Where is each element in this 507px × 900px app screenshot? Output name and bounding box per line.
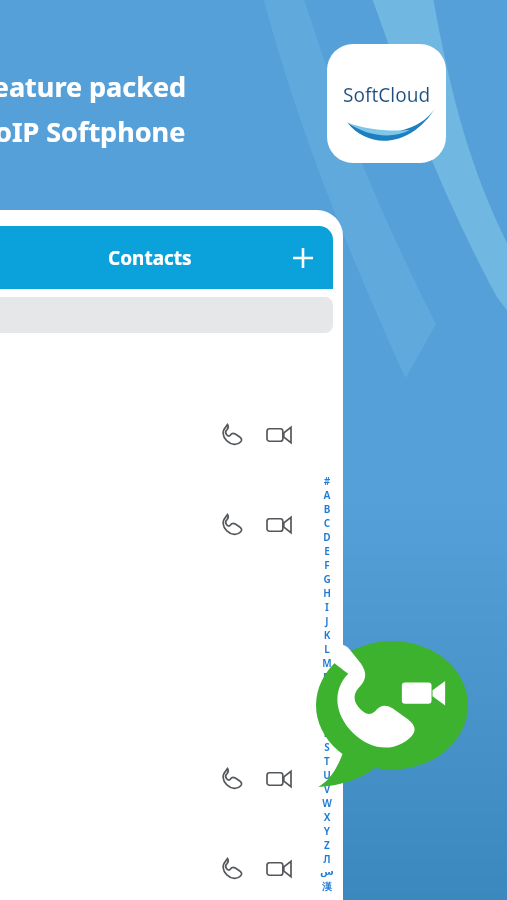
staticText: V xyxy=(316,782,338,796)
staticText: B xyxy=(316,502,338,516)
button[interactable]: Voice call xyxy=(0,847,333,891)
button[interactable]: Voice call xyxy=(211,505,251,545)
staticText: Л xyxy=(316,852,338,866)
button[interactable]: Voice call xyxy=(211,415,251,455)
staticText: Contacts xyxy=(108,245,192,271)
staticText: N xyxy=(316,670,338,684)
staticText: K xyxy=(316,628,338,642)
button[interactable]: Video call xyxy=(259,505,299,545)
button[interactable]: Add contact xyxy=(283,238,323,278)
staticText: D xyxy=(316,530,338,544)
staticText: E xyxy=(316,544,338,558)
staticText: F xyxy=(316,558,338,572)
staticText: Feature packed xyxy=(0,68,187,105)
staticText: J xyxy=(316,614,338,628)
staticText: W xyxy=(316,796,338,810)
button[interactable]: Video call xyxy=(259,849,299,889)
staticText: A xyxy=(316,488,338,502)
staticText: C xyxy=(316,516,338,530)
button[interactable]: Voice call xyxy=(0,503,333,547)
button[interactable]: Voice call xyxy=(211,849,251,889)
staticText: VoIP Softphone xyxy=(0,113,186,150)
staticText: Y xyxy=(316,824,338,838)
staticText: O xyxy=(316,684,338,698)
button[interactable]: Video call xyxy=(259,415,299,455)
button[interactable]: Start a call xyxy=(316,641,468,787)
staticText: T xyxy=(316,754,338,768)
staticText: L xyxy=(316,642,338,656)
staticText: R xyxy=(316,726,338,740)
staticText: H xyxy=(316,586,338,600)
button[interactable]: Voice call xyxy=(0,757,333,801)
button[interactable]: Voice call xyxy=(0,413,333,457)
staticText: SoftCloud xyxy=(343,82,431,108)
button[interactable]: Video call xyxy=(259,759,299,799)
staticText: س xyxy=(316,866,338,880)
button[interactable]: Voice call xyxy=(211,759,251,799)
staticText: M xyxy=(316,656,338,670)
staticText: G xyxy=(316,572,338,586)
staticText: P xyxy=(316,698,338,712)
button[interactable]: Alphabet index xyxy=(316,474,338,894)
staticText: U xyxy=(316,768,338,782)
staticText: Q xyxy=(316,712,338,726)
staticText: X xyxy=(316,810,338,824)
staticText: I xyxy=(316,600,338,614)
staticText: S xyxy=(316,740,338,754)
staticText: # xyxy=(316,474,338,488)
staticText: 漢 xyxy=(316,880,338,894)
staticText: Z xyxy=(316,838,338,852)
button[interactable]: SoftCloud logo xyxy=(327,44,446,163)
